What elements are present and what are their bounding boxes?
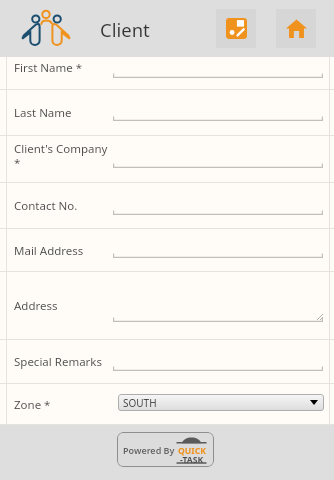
button[interactable]: SOUTH bbox=[118, 394, 324, 411]
button[interactable]: Address bbox=[0, 272, 334, 340]
staticText: SOUTH bbox=[123, 396, 157, 410]
staticText: Mail Address bbox=[14, 243, 84, 259]
button[interactable]: Special Remarks bbox=[0, 340, 334, 384]
staticText: Client bbox=[100, 17, 150, 42]
staticText: Last Name bbox=[14, 105, 72, 121]
button[interactable]: Home bbox=[276, 9, 316, 48]
staticText: Contact No. bbox=[14, 198, 78, 214]
button[interactable]: Last Name bbox=[0, 90, 334, 136]
button[interactable]: Contact No. bbox=[0, 183, 334, 229]
button[interactable]: Zone * bbox=[0, 384, 334, 425]
staticText: Client's Company * bbox=[14, 141, 108, 170]
button[interactable]: Tasks bbox=[216, 9, 256, 48]
button[interactable]: First Name * bbox=[0, 57, 334, 90]
staticText: Zone * bbox=[14, 397, 51, 413]
staticText: Powered By bbox=[123, 444, 175, 456]
button[interactable]: Powered By bbox=[117, 432, 214, 467]
button[interactable]: Client's Company * bbox=[0, 136, 334, 183]
staticText: First Name * bbox=[14, 60, 83, 76]
staticText: -TASK bbox=[180, 454, 204, 466]
staticText: Special Remarks bbox=[14, 354, 103, 370]
button[interactable]: Mail Address bbox=[0, 229, 334, 272]
staticText: QUICK bbox=[178, 445, 206, 457]
staticText: Address bbox=[14, 298, 58, 314]
